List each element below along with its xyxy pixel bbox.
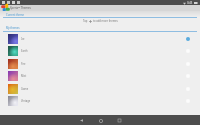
staticText: Earth [21, 49, 28, 53]
button[interactable]: Recent apps [115, 116, 124, 125]
button[interactable]: Fire [0, 57, 200, 70]
button[interactable]: Ice [0, 32, 200, 45]
button[interactable]: Vintage [0, 94, 200, 107]
button[interactable]: Select theme Ice [183, 34, 192, 43]
button[interactable]: Earth [0, 44, 200, 57]
button[interactable]: Select theme Game [183, 84, 192, 93]
button[interactable]: Tap [83, 19, 118, 23]
button[interactable]: Select theme Vintage [183, 96, 192, 105]
button[interactable]: Back [77, 116, 86, 125]
staticText: Xperia™ Themes [10, 6, 31, 10]
staticText: My themes [6, 26, 20, 30]
button[interactable]: Select theme Fire [183, 59, 192, 68]
staticText: Fire [21, 62, 26, 66]
staticText: Mist [21, 74, 27, 78]
staticText: Game [21, 87, 29, 91]
staticText: 3:45 [187, 1, 193, 5]
button[interactable]: Mist [0, 69, 200, 82]
staticText: Current theme [6, 13, 24, 17]
button[interactable]: Game [0, 82, 200, 95]
staticText: to add more themes [93, 19, 118, 23]
staticText: Tap [83, 19, 88, 23]
button[interactable]: Home [96, 116, 105, 125]
button[interactable]: Select theme Mist [183, 71, 192, 80]
staticText: Vintage [21, 99, 31, 103]
button[interactable]: Select theme Earth [183, 46, 192, 55]
staticText: Ice [21, 37, 25, 41]
